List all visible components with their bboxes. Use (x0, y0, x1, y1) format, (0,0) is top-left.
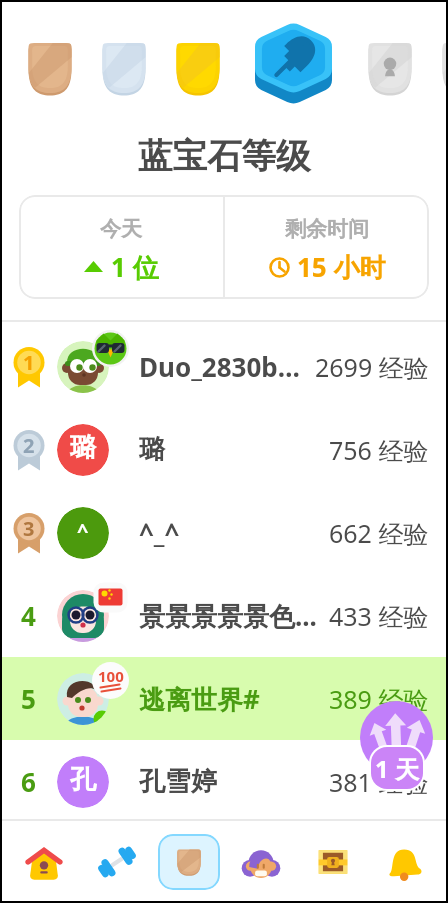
button[interactable]: 3 (0, 491, 448, 574)
staticText: 389 经验 (329, 682, 429, 716)
staticText: 5 (21, 681, 36, 716)
staticText: ^ (77, 517, 89, 544)
staticText: 100 (98, 666, 124, 686)
staticText: 662 经验 (329, 516, 429, 550)
staticText: 剩余时间 (285, 216, 369, 242)
staticText: 756 经验 (329, 433, 429, 467)
staticText: 15 小时 (297, 249, 386, 285)
staticText: 1 (23, 349, 35, 376)
button[interactable]: 1 (0, 325, 448, 408)
button[interactable]: 2 (0, 408, 448, 491)
staticText: 今天 (100, 216, 142, 242)
staticText: 3 (23, 515, 35, 542)
staticText: 381 经验 (329, 765, 429, 799)
staticText: 4 (21, 598, 36, 633)
button[interactable]: Notifications (369, 821, 441, 903)
button[interactable]: 6 (0, 740, 448, 823)
staticText: 2 (23, 432, 35, 459)
button[interactable]: Streak boost (360, 701, 433, 774)
staticText: ^_^ (139, 515, 323, 550)
button[interactable]: Practice (80, 821, 153, 903)
staticText: 433 经验 (329, 599, 429, 633)
staticText: 孔 (70, 763, 96, 796)
button[interactable]: Leaderboard (153, 821, 225, 903)
button[interactable]: 4 (0, 574, 448, 657)
staticText: 2699 经验 (315, 350, 429, 384)
staticText: 璐 (70, 431, 96, 464)
button[interactable]: Home (7, 821, 80, 903)
staticText: 蓝宝石等级 (138, 135, 311, 178)
button[interactable]: Chest (297, 821, 369, 903)
staticText: 景景景景景色... (139, 598, 323, 634)
staticText: 璐 (139, 433, 323, 466)
staticText: 1 天 (375, 752, 419, 785)
staticText: Duo_2830bb... (139, 349, 309, 384)
staticText: 逃离世界# (139, 681, 323, 717)
button[interactable]: Profile (225, 821, 297, 903)
staticText: 1 位 (111, 249, 159, 285)
button[interactable]: 5 (0, 657, 448, 740)
staticText: 孔雪婷 (139, 765, 323, 798)
staticText: 6 (21, 764, 36, 799)
